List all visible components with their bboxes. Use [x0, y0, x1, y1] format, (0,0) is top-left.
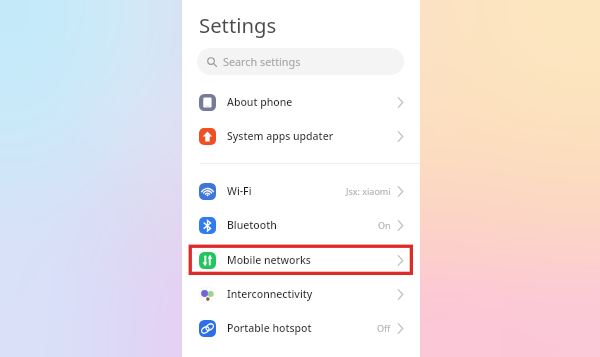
staticText: Wi-Fi — [227, 184, 252, 198]
button[interactable]: Search — [197, 48, 404, 75]
button[interactable]: Interconnectivity — [182, 277, 420, 311]
staticText: Portable hotspot — [227, 321, 312, 335]
staticText: Mobile networks — [227, 253, 311, 267]
button[interactable]: Mobile networks — [182, 243, 420, 277]
staticText: System apps updater — [227, 129, 334, 143]
button[interactable]: Bluetooth — [182, 208, 420, 242]
staticText: Interconnectivity — [227, 287, 313, 301]
staticText: Search settings — [223, 54, 301, 69]
staticText: About phone — [227, 95, 293, 109]
staticText: Settings — [199, 11, 277, 39]
staticText: Off — [377, 322, 391, 334]
staticText: Bluetooth — [227, 218, 277, 232]
button[interactable]: System apps updater — [182, 119, 420, 153]
button[interactable]: Wi-Fi — [182, 174, 420, 208]
button[interactable]: About phone — [182, 85, 420, 119]
staticText: On — [378, 219, 391, 231]
other: Search — [207, 57, 217, 67]
staticText: Jsx: xiaomi — [346, 185, 391, 197]
button[interactable]: Portable hotspot — [182, 311, 420, 345]
